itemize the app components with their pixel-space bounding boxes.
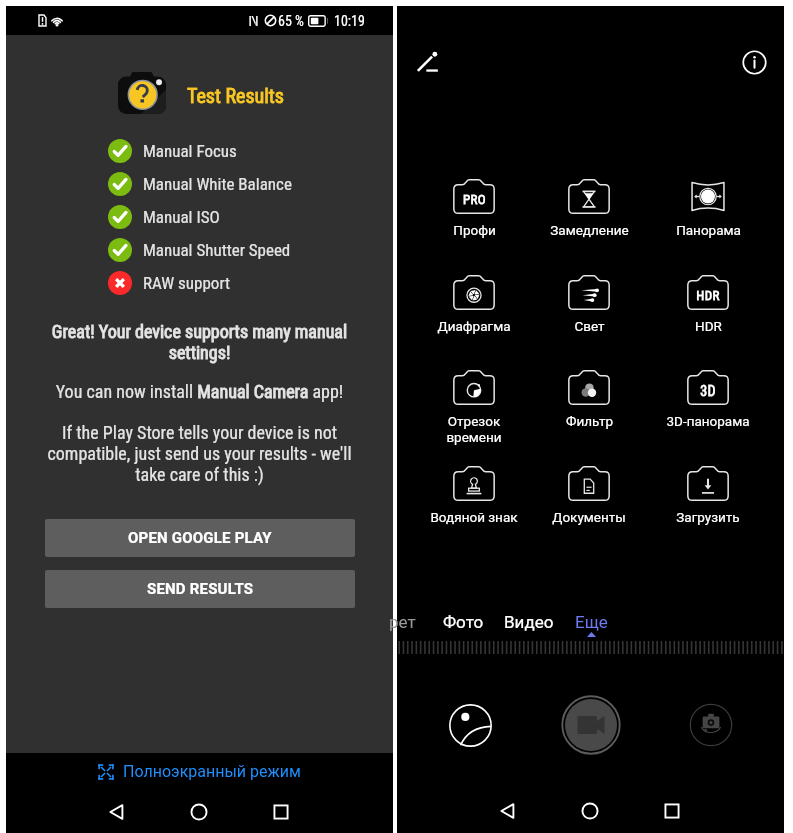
staticText: 10:19 [334, 13, 365, 29]
button[interactable]: Документы [529, 466, 649, 525]
button[interactable]: Диафрагма [414, 275, 534, 334]
staticText: 3D-панорама [666, 413, 750, 429]
staticText: Manual Focus [143, 141, 237, 161]
button[interactable]: Свет [529, 275, 649, 334]
staticText: Manual Shutter Speed [143, 240, 291, 260]
button[interactable]: Фильтр [529, 370, 649, 429]
staticText: OPEN GOOGLE PLAY [128, 529, 272, 547]
button[interactable]: Switch camera [687, 701, 735, 749]
staticText: Водяной знак [430, 509, 518, 525]
staticText: Свет [574, 318, 605, 334]
button[interactable]: Замедление [529, 179, 649, 238]
staticText: HDR [695, 318, 722, 334]
button[interactable]: Видео [504, 612, 554, 632]
staticText: Документы [552, 509, 626, 525]
button[interactable]: Manual ISO [108, 204, 220, 230]
button[interactable]: Home [179, 792, 219, 832]
button[interactable]: Recents [652, 791, 692, 831]
button[interactable]: OPEN GOOGLE PLAY [45, 519, 355, 557]
button[interactable]: Водяной знак [414, 466, 534, 525]
button[interactable]: Manual Focus [108, 138, 237, 164]
staticText: 3D [700, 383, 716, 399]
staticText: Manual White Balance [143, 174, 292, 194]
button[interactable]: 3D [648, 370, 768, 429]
button[interactable]: Manual White Balance [108, 171, 292, 197]
staticText: Test Results [187, 84, 284, 107]
button[interactable]: Effects [408, 43, 446, 81]
staticText: Отрезок времени [446, 413, 502, 445]
staticText: Диафрагма [437, 318, 511, 334]
staticText: SEND RESULTS [147, 580, 254, 598]
button[interactable]: Gallery [444, 699, 496, 751]
staticText: Полноэкранный режим [123, 762, 301, 781]
button[interactable]: HDR [648, 275, 768, 334]
button[interactable]: Record [559, 693, 623, 757]
staticText: Great! Your device supports many manual … [26, 321, 373, 363]
button[interactable]: Панорама [648, 179, 768, 238]
staticText: HDR [696, 288, 720, 303]
staticText: Manual ISO [143, 207, 220, 227]
button[interactable]: Home [570, 791, 610, 831]
button[interactable]: Полноэкранный режим [6, 753, 393, 790]
staticText: Замедление [550, 222, 629, 238]
staticText: Фильтр [566, 413, 613, 429]
staticText: You can now install Manual Camera app! [18, 381, 381, 402]
button[interactable]: Manual Shutter Speed [108, 237, 291, 263]
button[interactable]: Recents [261, 792, 301, 832]
button[interactable]: Еще [575, 612, 608, 632]
staticText: Профи [453, 222, 496, 238]
button[interactable]: Загрузить [648, 466, 768, 525]
staticText: PRO [463, 192, 486, 207]
button[interactable]: PRO [414, 179, 534, 238]
staticText: RAW support [143, 273, 231, 293]
button[interactable]: RAW support [108, 270, 231, 296]
button[interactable]: Фото [443, 612, 484, 632]
staticText: If the Play Store tells your device is n… [45, 422, 354, 485]
staticText: Загрузить [676, 509, 740, 525]
button[interactable]: Back [97, 792, 137, 832]
staticText: рет [389, 612, 416, 632]
button[interactable]: Отрезок времени [414, 370, 534, 445]
staticText: 65 % [278, 13, 304, 29]
button[interactable]: Back [488, 791, 528, 831]
staticText: Панорама [676, 222, 741, 238]
button[interactable]: Info [735, 43, 773, 81]
button[interactable]: SEND RESULTS [45, 570, 355, 608]
